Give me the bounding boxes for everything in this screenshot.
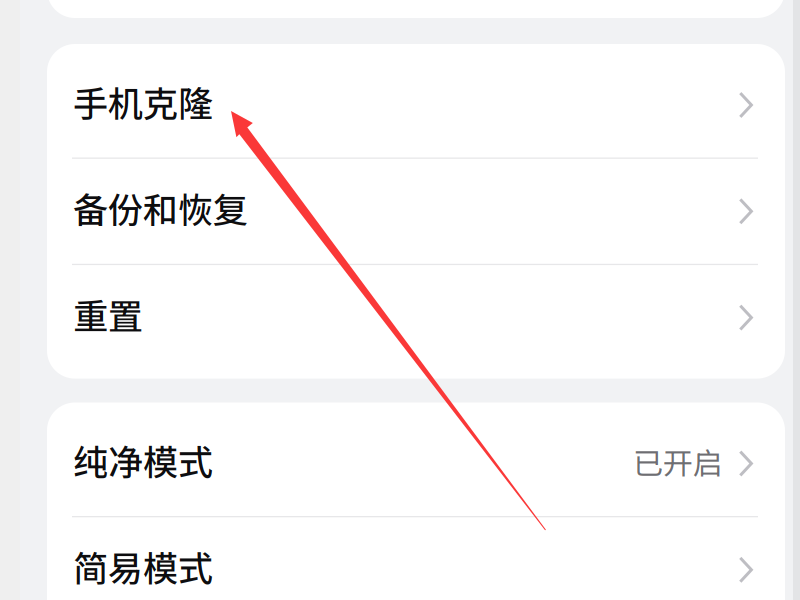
- button[interactable]: 重置: [47, 265, 785, 370]
- staticText: 纯净模式: [73, 435, 213, 485]
- staticText: 重置: [73, 289, 143, 339]
- button[interactable]: 简易模式: [47, 517, 785, 600]
- button[interactable]: 备份和恢复: [47, 159, 785, 264]
- staticText: 简易模式: [73, 541, 213, 592]
- staticText: 已开启: [633, 440, 723, 483]
- button[interactable]: 纯净模式: [47, 411, 785, 516]
- button[interactable]: 手机克隆: [47, 52, 785, 157]
- staticText: 手机克隆: [73, 76, 213, 127]
- staticText: 备份和恢复: [73, 182, 248, 233]
